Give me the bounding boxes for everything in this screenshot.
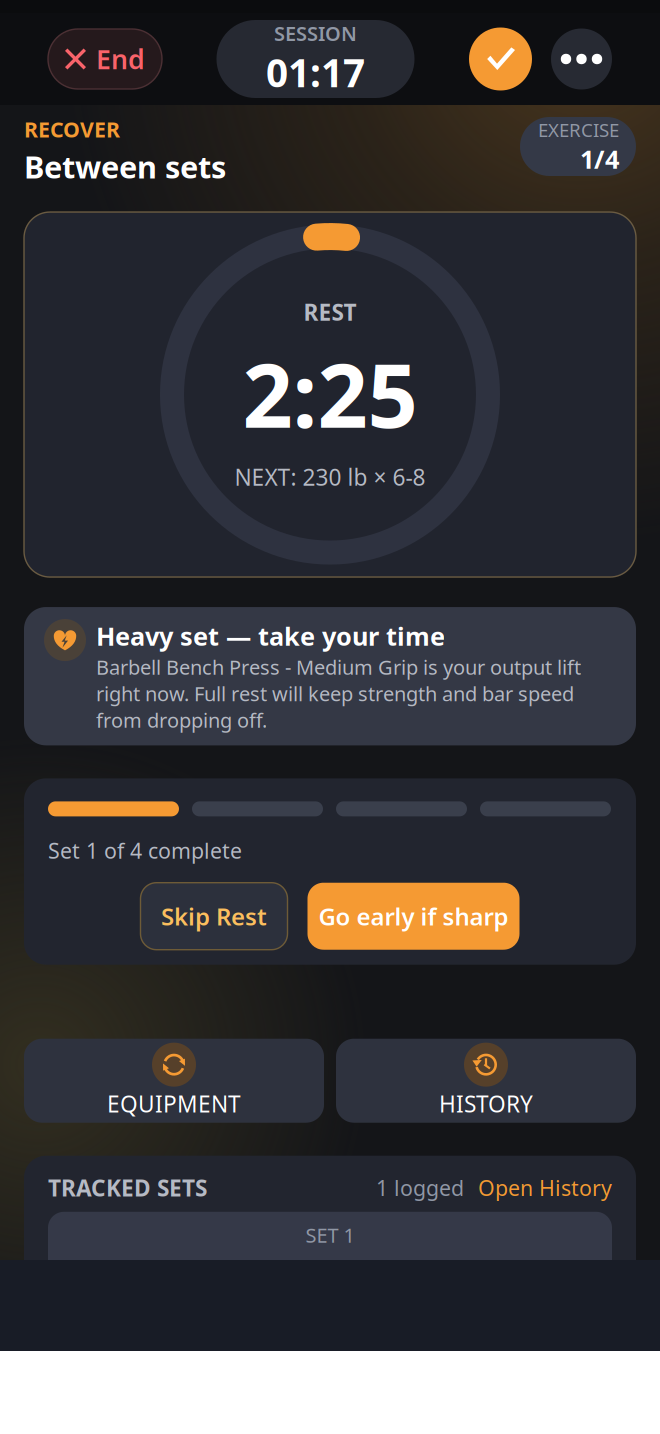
staticText: TRACKED SETS [48, 1173, 207, 1203]
staticText: SESSION [274, 20, 357, 47]
button[interactable]: HISTORY [336, 1039, 636, 1123]
staticText: Barbell Bench Press - Medium Grip is you… [96, 654, 581, 733]
staticText: End [96, 41, 145, 77]
staticText: RECOVER [24, 115, 120, 143]
staticText: Go early if sharp [318, 900, 508, 932]
button[interactable]: Skip Rest [140, 883, 287, 950]
staticText: 1/4 [580, 142, 619, 176]
staticText: Heavy set — take your time [96, 619, 445, 653]
button[interactable]: EQUIPMENT [24, 1039, 324, 1123]
staticText: Between sets [24, 146, 226, 187]
button[interactable]: Complete set [469, 27, 532, 90]
staticText: Open History [478, 1174, 612, 1202]
button[interactable]: Go early if sharp [307, 883, 519, 950]
staticText: REST [303, 297, 356, 327]
staticText: SET 1 [305, 1222, 354, 1248]
staticText: 01:17 [266, 47, 365, 98]
staticText: 230×6 [285, 1250, 375, 1293]
button[interactable]: SESSION [216, 20, 414, 98]
button[interactable]: More options [551, 28, 612, 89]
staticText: Set 1 of 4 complete [48, 836, 242, 865]
staticText: EXERCISE [538, 117, 619, 142]
staticText: Skip Rest [161, 900, 267, 932]
staticText: HISTORY [439, 1089, 533, 1119]
staticText: 1 logged [376, 1174, 464, 1202]
staticText: EQUIPMENT [107, 1089, 241, 1119]
staticText: 2:25 [242, 335, 417, 452]
button[interactable]: End [48, 29, 162, 89]
button[interactable]: Open History [464, 1174, 612, 1202]
staticText: NEXT: 230 lb × 6-8 [234, 462, 425, 492]
